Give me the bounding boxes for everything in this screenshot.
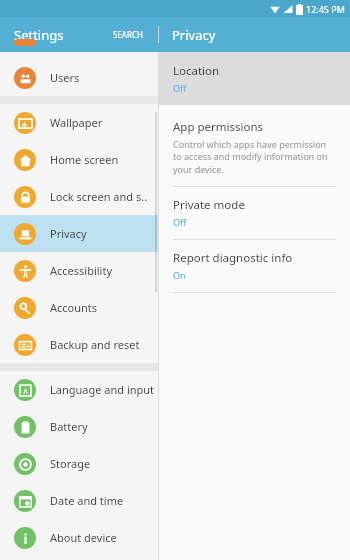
button[interactable]: Storage [0,445,158,482]
staticText: About device [50,530,117,545]
button[interactable]: Language and input [0,371,158,408]
button[interactable]: Lock screen and s.. [0,178,158,215]
button[interactable]: Privacy [159,17,350,52]
staticText: Control which apps have permission to ac… [173,138,334,176]
staticText: SEARCH [113,29,143,40]
staticText: On [173,269,186,281]
staticText: Lock screen and s.. [50,189,148,204]
staticText: 12:45 PM [306,3,345,15]
staticText: Private mode [173,197,245,213]
staticText: Off [173,216,187,228]
staticText: Accounts [50,300,98,315]
button[interactable]: Privacy [0,215,158,252]
staticText: Date and time [50,493,124,508]
button[interactable]: Accessibility [0,252,158,289]
button[interactable]: App permissions [159,111,350,186]
button[interactable]: Date and time [0,482,158,519]
staticText: Location [173,63,220,79]
staticText: Battery [50,419,88,434]
button[interactable]: Settings [0,17,105,52]
staticText: Privacy [50,226,87,241]
button[interactable]: Report diagnostic info [159,240,350,292]
button[interactable]: Users [0,59,158,96]
button[interactable]: Location [159,52,350,105]
staticText: Users [50,70,80,85]
staticText: Settings [14,26,64,44]
staticText: Off [173,82,187,94]
staticText: Report diagnostic info [173,250,293,266]
button[interactable]: Private mode [159,187,350,239]
staticText: Language and input [50,382,155,397]
staticText: Storage [50,456,91,471]
button[interactable]: Battery [0,408,158,445]
button[interactable]: SEARCH [105,17,151,52]
button[interactable]: About device [0,519,158,556]
button[interactable]: Backup and reset [0,326,158,363]
staticText: Wallpaper [50,115,103,130]
button[interactable]: Wallpaper [0,104,158,141]
button[interactable]: Accounts [0,289,158,326]
staticText: Accessibility [50,263,113,278]
staticText: Home screen [50,152,119,167]
staticText: Privacy [172,26,216,44]
staticText: Backup and reset [50,337,140,352]
button[interactable]: Home screen [0,141,158,178]
staticText: App permissions [173,119,264,135]
